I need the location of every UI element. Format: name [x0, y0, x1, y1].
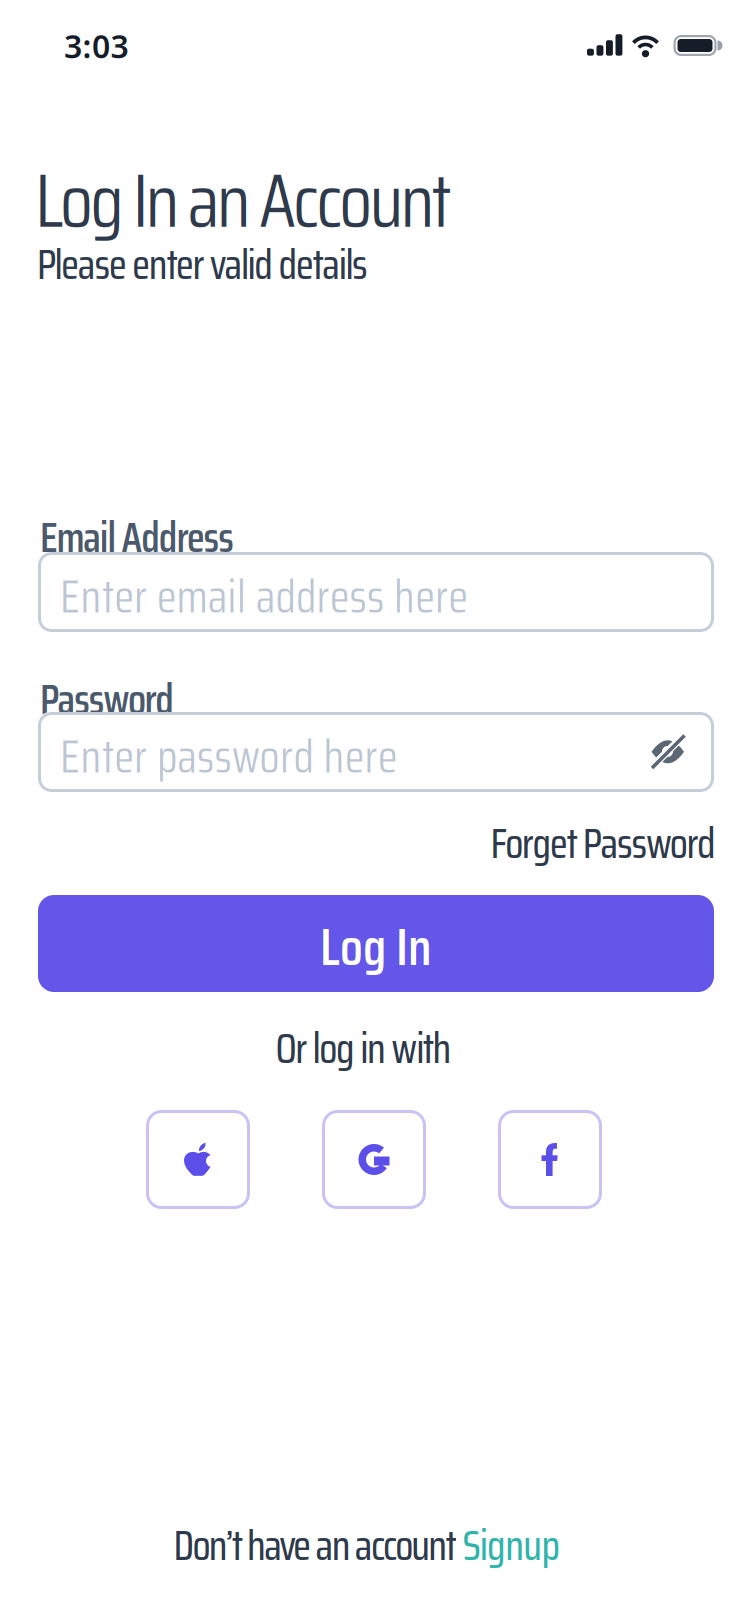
- button[interactable]: Forget Password: [491, 811, 716, 876]
- button[interactable]: [38, 712, 714, 792]
- staticText: Password: [40, 667, 174, 732]
- button[interactable]: Signup: [462, 1513, 560, 1578]
- staticText: Signup: [462, 1513, 560, 1578]
- button[interactable]: [38, 552, 714, 632]
- staticText: Please enter valid details: [37, 232, 368, 297]
- staticText: Log In an Account: [35, 142, 452, 259]
- button[interactable]: [146, 1110, 250, 1209]
- staticText: Or log in with: [275, 1016, 451, 1081]
- staticText: Enter email address here: [60, 561, 467, 632]
- staticText: 3:03: [64, 24, 128, 67]
- button[interactable]: [650, 733, 686, 769]
- staticText: Enter password here: [60, 721, 397, 792]
- button[interactable]: [498, 1110, 602, 1209]
- staticText: Don’t have an account: [173, 1513, 463, 1578]
- button[interactable]: Log In: [38, 895, 714, 992]
- button[interactable]: [322, 1110, 426, 1209]
- staticText: Email Address: [40, 505, 234, 570]
- staticText: Forget Password: [491, 811, 716, 876]
- staticText: Log In: [320, 906, 432, 988]
